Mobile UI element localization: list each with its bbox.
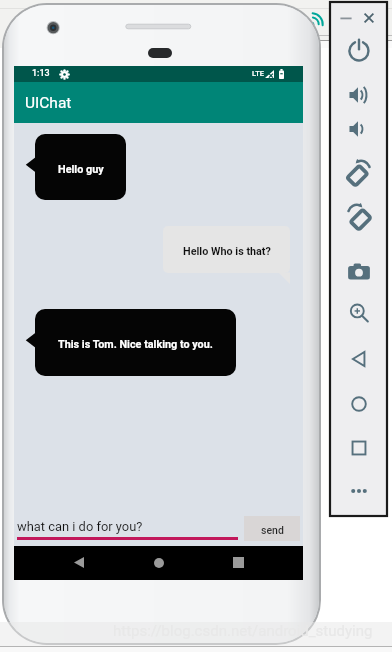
button[interactable]: Take screenshot — [342, 255, 376, 289]
button[interactable]: Power — [342, 34, 376, 68]
button[interactable]: Volume down — [342, 112, 376, 146]
button[interactable]: Home — [142, 546, 175, 579]
button[interactable]: Rotate left — [342, 156, 376, 190]
button[interactable]: send — [244, 516, 300, 541]
staticText: https://blog.csdn.net/android_studying — [113, 622, 373, 640]
button[interactable]: Recent apps — [222, 546, 255, 579]
button[interactable]: Hello guy — [35, 134, 126, 200]
button[interactable]: Back — [342, 342, 376, 376]
staticText: This is Tom. Nice talking to you. — [58, 338, 213, 351]
staticText: LTE — [252, 69, 265, 78]
staticText: Hello guy — [58, 163, 104, 176]
button[interactable]: Close — [359, 8, 379, 28]
button[interactable]: Minimize — [336, 8, 356, 28]
button[interactable]: Hello Who is that? — [163, 226, 290, 273]
staticText: send — [261, 524, 284, 536]
button[interactable]: Back — [62, 546, 95, 579]
button[interactable]: More — [342, 474, 376, 508]
staticText: UIChat — [25, 94, 72, 112]
button[interactable]: UIChat — [14, 82, 303, 123]
button[interactable]: Rotate right — [342, 200, 376, 234]
button[interactable]: Volume up — [342, 78, 376, 112]
button[interactable]: Home — [342, 387, 376, 421]
staticText: what can i do for you? — [17, 519, 143, 534]
button[interactable]: This is Tom. Nice talking to you. — [35, 309, 236, 376]
staticText: 1:13 — [32, 68, 50, 79]
staticText: Hello Who is that? — [183, 245, 271, 258]
button[interactable]: Zoom — [342, 296, 376, 330]
button[interactable]: Recent apps — [342, 431, 376, 465]
